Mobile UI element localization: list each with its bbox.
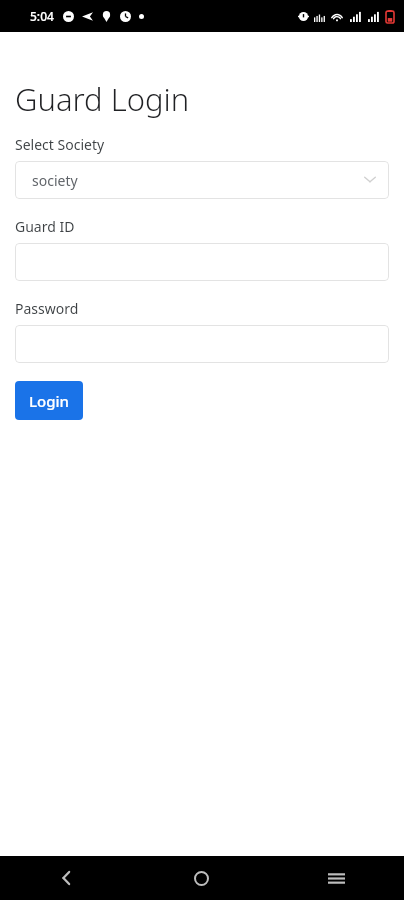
button[interactable]: Login <box>15 381 83 420</box>
staticText: Select Society <box>15 135 105 154</box>
staticText: Guard Login <box>15 78 190 120</box>
staticText: Guard ID <box>15 217 75 236</box>
button[interactable]: society <box>15 161 389 199</box>
staticText: Login <box>29 391 69 411</box>
button[interactable]: Recent apps <box>269 856 404 900</box>
button[interactable]: Home <box>134 856 269 900</box>
staticText: Password <box>15 299 79 318</box>
staticText: 5:04 <box>30 8 54 24</box>
button[interactable] <box>15 325 389 363</box>
staticText: society <box>32 171 363 190</box>
button[interactable]: Back <box>0 856 134 900</box>
button[interactable] <box>15 243 389 281</box>
